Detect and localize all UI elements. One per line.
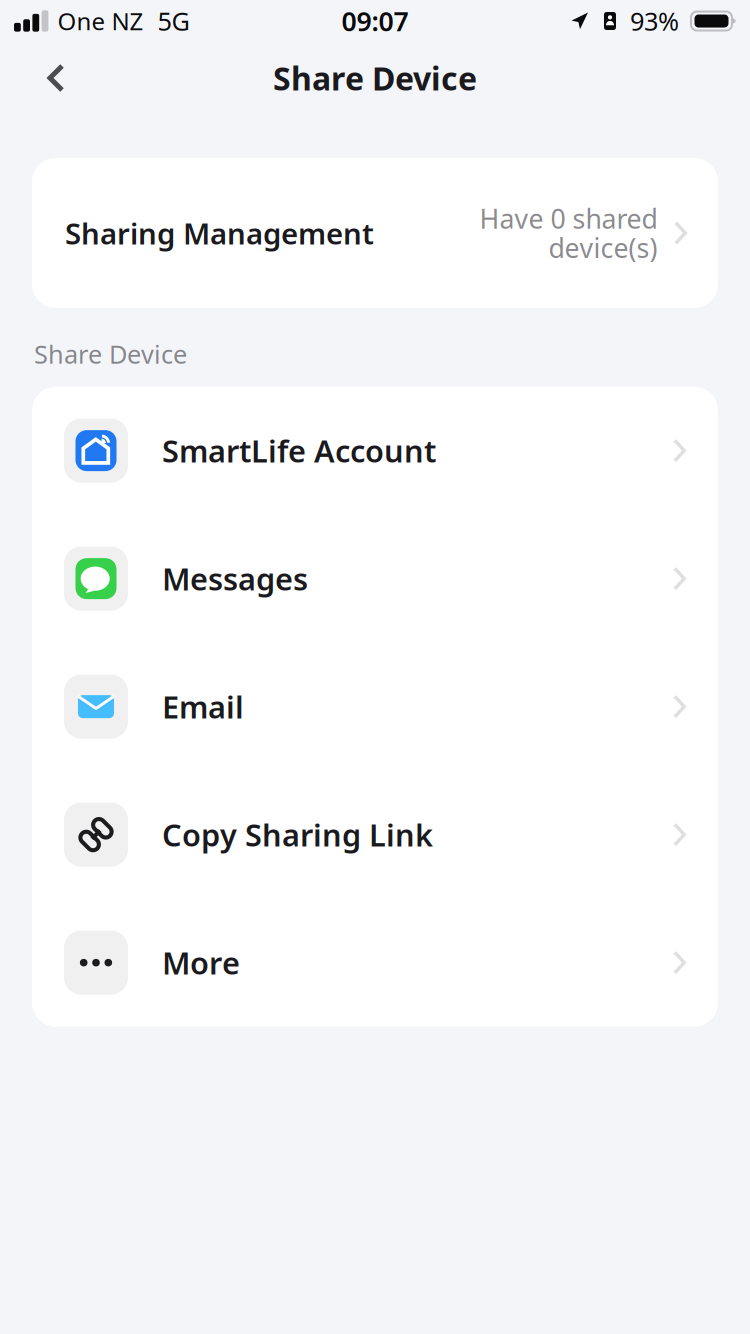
button[interactable]: Sharing Management <box>32 158 718 308</box>
staticText: SmartLife Account <box>162 430 436 471</box>
staticText: Sharing Management <box>65 213 374 252</box>
staticText: Share Device <box>34 337 187 371</box>
staticText: Copy Sharing Link <box>162 814 433 855</box>
staticText: One NZ <box>57 5 143 37</box>
staticText: 09:07 <box>341 3 408 39</box>
staticText: More <box>162 942 240 983</box>
button[interactable]: Copy Sharing Link <box>32 771 718 899</box>
button[interactable]: SmartLife Account <box>32 387 718 515</box>
staticText: Email <box>162 686 244 727</box>
button[interactable]: Messages <box>32 515 718 643</box>
staticText: Messages <box>162 558 308 599</box>
staticText: Share Device <box>273 57 477 99</box>
button[interactable]: Email <box>32 643 718 771</box>
button[interactable]: Back <box>26 47 86 109</box>
button[interactable]: More <box>32 899 718 1027</box>
staticText: Have 0 shared device(s) <box>479 201 657 265</box>
staticText: 93% <box>630 4 679 38</box>
staticText: 5G <box>157 4 189 38</box>
